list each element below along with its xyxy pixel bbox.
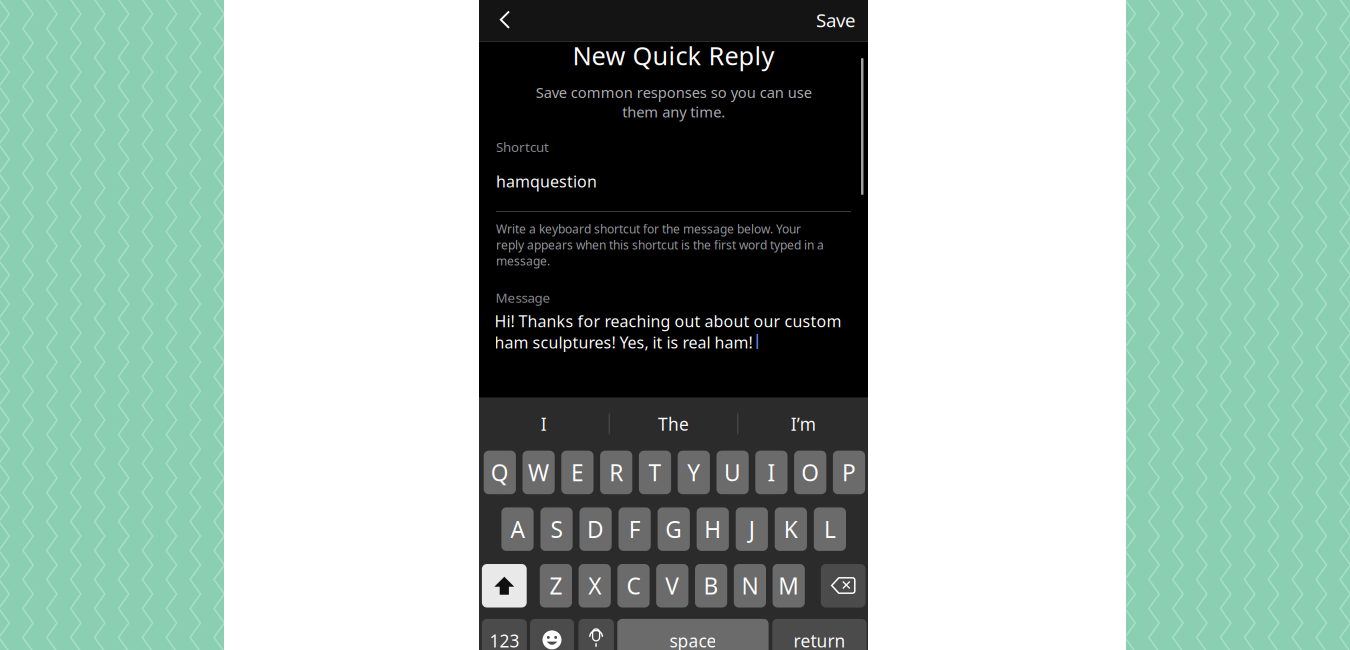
button[interactable]: Delete bbox=[821, 564, 866, 607]
button[interactable]: K bbox=[775, 507, 807, 551]
button[interactable]: I bbox=[755, 451, 787, 494]
staticText: Y bbox=[687, 457, 700, 487]
button[interactable]: H bbox=[697, 507, 729, 551]
staticText: X bbox=[588, 571, 601, 601]
button[interactable]: N bbox=[734, 564, 766, 607]
staticText: W bbox=[528, 457, 549, 487]
button[interactable]: W bbox=[522, 451, 555, 494]
staticText: U bbox=[724, 457, 741, 487]
staticText: Shortcut bbox=[496, 138, 549, 156]
button[interactable]: Dictate bbox=[578, 619, 614, 650]
staticText: Message bbox=[495, 289, 550, 306]
button[interactable]: T bbox=[639, 451, 671, 494]
button[interactable]: E bbox=[561, 451, 593, 494]
button[interactable]: Y bbox=[678, 451, 710, 494]
button[interactable]: I’m bbox=[738, 397, 868, 450]
button[interactable]: F bbox=[618, 507, 651, 551]
button[interactable]: U bbox=[716, 451, 749, 494]
button[interactable]: D bbox=[579, 507, 612, 551]
staticText: B bbox=[704, 571, 719, 601]
button[interactable]: S bbox=[540, 507, 573, 551]
staticText: H bbox=[704, 514, 721, 544]
button[interactable]: Back bbox=[487, 2, 523, 38]
staticText: O bbox=[801, 457, 819, 487]
button[interactable]: I bbox=[479, 397, 609, 450]
button[interactable]: C bbox=[617, 564, 650, 607]
staticText: Q bbox=[491, 457, 509, 487]
staticText: G bbox=[665, 514, 682, 544]
button[interactable]: space bbox=[617, 619, 769, 650]
staticText: N bbox=[741, 571, 758, 601]
staticText: V bbox=[665, 571, 679, 601]
button[interactable]: The bbox=[610, 397, 737, 450]
staticText: 123 bbox=[489, 629, 519, 650]
staticText: P bbox=[842, 457, 856, 487]
button[interactable]: J bbox=[736, 507, 768, 551]
button[interactable]: Z bbox=[540, 564, 572, 607]
button[interactable]: Save bbox=[810, 2, 862, 38]
staticText: D bbox=[587, 514, 604, 544]
button[interactable]: G bbox=[658, 507, 690, 551]
staticText: A bbox=[510, 514, 524, 544]
staticText: E bbox=[571, 457, 584, 487]
staticText: I bbox=[767, 457, 775, 487]
button[interactable]: Q bbox=[484, 451, 516, 494]
staticText: J bbox=[749, 514, 755, 544]
staticText: New Quick Reply bbox=[572, 39, 774, 72]
staticText: space bbox=[669, 629, 716, 650]
staticText: S bbox=[550, 514, 562, 544]
staticText: T bbox=[648, 457, 661, 487]
staticText: R bbox=[609, 457, 623, 487]
staticText: Save bbox=[816, 8, 856, 32]
staticText: Save common responses so you can use the… bbox=[535, 82, 811, 121]
button[interactable]: P bbox=[833, 451, 865, 494]
staticText: K bbox=[784, 514, 798, 544]
staticText: Z bbox=[549, 571, 562, 601]
button[interactable]: V bbox=[656, 564, 688, 607]
button[interactable]: B bbox=[695, 564, 727, 607]
button[interactable]: O bbox=[794, 451, 826, 494]
button[interactable]: R bbox=[600, 451, 632, 494]
button[interactable]: Shortcut bbox=[496, 138, 851, 206]
button[interactable]: Message bbox=[495, 289, 852, 385]
button[interactable]: X bbox=[579, 564, 611, 607]
staticText: Write a keyboard shortcut for the messag… bbox=[496, 221, 824, 269]
staticText: L bbox=[824, 514, 836, 544]
staticText: C bbox=[626, 571, 640, 601]
staticText: Hi! Thanks for reaching out about our cu… bbox=[494, 310, 841, 353]
staticText: M bbox=[778, 571, 799, 601]
button[interactable]: Shift bbox=[482, 564, 527, 607]
button[interactable]: Emoji bbox=[530, 619, 574, 650]
staticText: hamquestion bbox=[496, 171, 597, 192]
button[interactable]: A bbox=[501, 507, 534, 551]
staticText: The bbox=[658, 412, 689, 435]
staticText: return bbox=[793, 629, 845, 650]
staticText: I bbox=[541, 412, 547, 435]
button[interactable]: 123 bbox=[482, 619, 527, 650]
staticText: I’m bbox=[791, 412, 816, 435]
button[interactable]: return bbox=[772, 619, 867, 650]
staticText: F bbox=[629, 514, 641, 544]
button[interactable]: L bbox=[814, 507, 846, 551]
button[interactable]: M bbox=[773, 564, 805, 607]
